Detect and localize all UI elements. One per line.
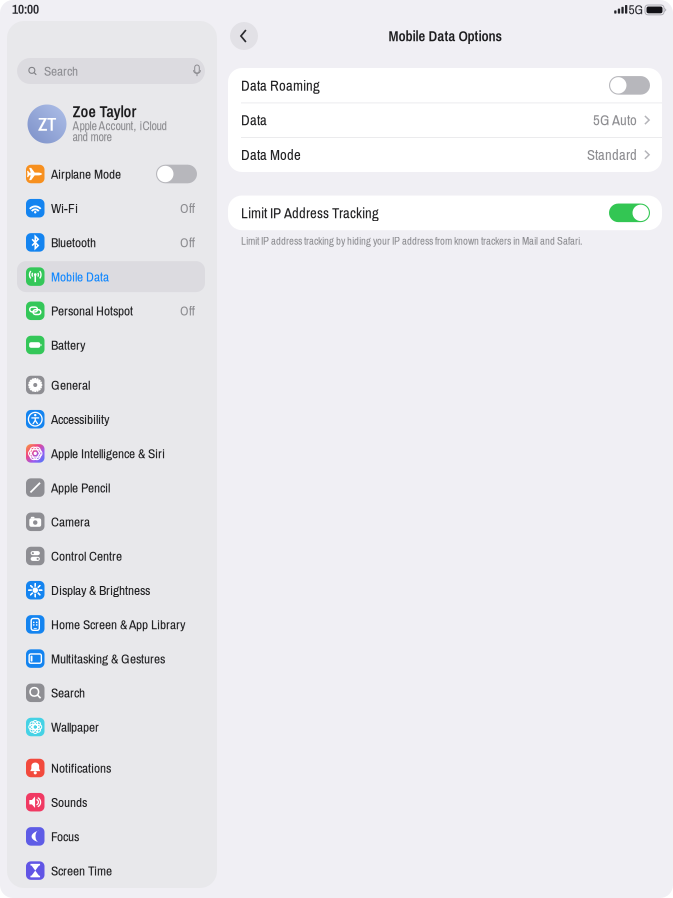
- button[interactable]: Airplane Mode: [17, 158, 205, 189]
- staticText: Sounds: [51, 793, 87, 811]
- staticText: Apple Intelligence & Siri: [51, 445, 165, 462]
- staticText: Control Centre: [51, 547, 122, 565]
- button[interactable]: Data Mode: [228, 137, 662, 172]
- staticText: Screen Time: [51, 862, 112, 879]
- button[interactable]: General: [17, 369, 205, 400]
- staticText: Apple Account, iCloud: [72, 118, 166, 134]
- staticText: Standard: [587, 145, 637, 164]
- button[interactable]: Focus: [17, 821, 205, 852]
- button[interactable]: Data Roaming: [228, 68, 662, 103]
- staticText: Search: [44, 62, 78, 80]
- staticText: Data Roaming: [241, 76, 320, 95]
- staticText: Zoe Taylor: [72, 101, 136, 122]
- staticText: Bluetooth: [51, 234, 96, 251]
- button[interactable]: Data: [228, 103, 662, 137]
- button[interactable]: Camera: [17, 506, 205, 537]
- staticText: Limit IP Address Tracking: [241, 203, 379, 222]
- staticText: Multitasking & Gestures: [51, 650, 165, 667]
- button[interactable]: Display & Brightness: [17, 575, 205, 606]
- staticText: Home Screen & App Library: [51, 616, 185, 633]
- button[interactable]: Notifications: [17, 752, 205, 783]
- staticText: General: [51, 376, 90, 394]
- staticText: Apple Pencil: [51, 479, 110, 496]
- button[interactable]: Accessibility: [17, 404, 205, 435]
- button[interactable]: Personal Hotspot: [17, 295, 205, 326]
- staticText: Mobile Data: [51, 268, 109, 285]
- button[interactable]: Mobile Data: [17, 261, 205, 292]
- staticText: Limit IP address tracking by hiding your…: [241, 234, 582, 248]
- button[interactable]: Limit IP Address Tracking: [228, 195, 662, 230]
- staticText: Accessibility: [51, 410, 109, 428]
- staticText: ZT: [38, 112, 56, 136]
- staticText: Focus: [51, 828, 79, 845]
- staticText: Data: [241, 110, 267, 130]
- staticText: Display & Brightness: [51, 581, 150, 599]
- button[interactable]: Wi-Fi: [17, 193, 205, 224]
- staticText: Battery: [51, 336, 85, 354]
- staticText: Mobile Data Options: [388, 26, 501, 46]
- button[interactable]: Apple Pencil: [17, 472, 205, 503]
- staticText: 5G: [628, 1, 643, 18]
- button[interactable]: Control Centre: [17, 540, 205, 571]
- staticText: Data Mode: [241, 145, 301, 164]
- staticText: Wi-Fi: [51, 199, 78, 217]
- staticText: 10:00: [12, 0, 39, 18]
- staticText: Notifications: [51, 759, 111, 777]
- button[interactable]: Wallpaper: [17, 711, 205, 742]
- staticText: Off: [180, 234, 195, 251]
- staticText: Off: [180, 302, 195, 319]
- staticText: Search: [51, 684, 85, 701]
- staticText: Off: [180, 199, 195, 217]
- button[interactable]: Bluetooth: [17, 227, 205, 258]
- staticText: Wallpaper: [51, 718, 99, 736]
- button[interactable]: Sounds: [17, 787, 205, 818]
- button[interactable]: ZT: [17, 102, 205, 146]
- button[interactable]: Search: [17, 677, 205, 708]
- button[interactable]: Battery: [17, 329, 205, 360]
- button[interactable]: Apple Intelligence & Siri: [17, 438, 205, 469]
- staticText: and more: [72, 129, 111, 145]
- button[interactable]: Screen Time: [17, 855, 205, 886]
- staticText: Personal Hotspot: [51, 302, 133, 319]
- staticText: 5G Auto: [593, 110, 637, 130]
- staticText: Camera: [51, 513, 90, 530]
- button[interactable]: Multitasking & Gestures: [17, 643, 205, 674]
- button[interactable]: Home Screen & App Library: [17, 609, 205, 640]
- button[interactable]: Back: [230, 22, 258, 50]
- staticText: Airplane Mode: [51, 165, 121, 183]
